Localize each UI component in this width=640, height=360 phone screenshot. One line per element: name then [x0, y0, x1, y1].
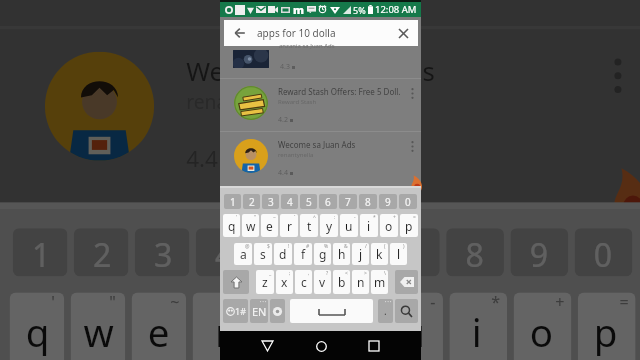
button[interactable]: Reward Stash Offers: Free 5 Doll.: [0, 0, 640, 26]
button[interactable]: 7: [339, 194, 357, 209]
staticText: u: [345, 218, 353, 234]
button[interactable]: n: [352, 270, 369, 294]
button[interactable]: r: [193, 292, 250, 360]
button[interactable]: 2: [243, 194, 260, 209]
button[interactable]: 2: [74, 228, 128, 276]
button[interactable]: Symbols: [223, 299, 248, 323]
button[interactable]: .: [378, 299, 393, 323]
button[interactable]: More options: [404, 79, 421, 131]
button[interactable]: q: [223, 214, 240, 237]
staticText: f: [301, 246, 306, 262]
staticText: y: [340, 305, 363, 357]
staticText: 1#: [235, 305, 246, 317]
button[interactable]: u: [385, 292, 443, 360]
button[interactable]: s: [254, 243, 272, 265]
button[interactable]: More options: [404, 132, 421, 184]
button[interactable]: Home: [308, 333, 334, 359]
staticText: z: [262, 274, 268, 290]
button[interactable]: Back: [224, 20, 418, 46]
button[interactable]: v: [314, 270, 331, 294]
button[interactable]: p: [400, 214, 418, 237]
staticText: Reward Stash Offers: Free 5 Doll.: [278, 86, 401, 97]
button[interactable]: 6: [319, 194, 337, 209]
button[interactable]: y: [321, 292, 379, 360]
button[interactable]: a: [234, 243, 252, 265]
button[interactable]: i: [449, 292, 507, 360]
staticText: \: [384, 270, 386, 277]
button[interactable]: c: [295, 270, 312, 294]
button[interactable]: t: [257, 292, 315, 360]
button[interactable]: 0: [399, 194, 417, 209]
button[interactable]: i: [360, 214, 378, 237]
staticText: g: [319, 246, 327, 262]
button[interactable]: More options: [591, 29, 640, 196]
button[interactable]: Reward Stash Offers: Free 5 Doll.: [220, 79, 421, 131]
button[interactable]: Wecome sa Juan Ads: [0, 29, 640, 196]
button[interactable]: g: [314, 243, 331, 265]
staticText: m: [293, 2, 304, 17]
button[interactable]: 9: [379, 194, 397, 209]
button[interactable]: y: [320, 214, 338, 237]
staticText: 7: [401, 231, 421, 276]
button[interactable]: e: [132, 292, 186, 360]
staticText: =: [619, 292, 629, 315]
button[interactable]: k: [371, 243, 388, 265]
button[interactable]: 4: [196, 228, 250, 276]
button[interactable]: 5: [300, 194, 317, 209]
button[interactable]: Shift: [223, 270, 249, 294]
button[interactable]: Wecome sa Juan Ads: [220, 132, 421, 184]
button[interactable]: b: [333, 270, 350, 294]
button[interactable]: Back: [254, 333, 280, 359]
staticText: @: [245, 243, 250, 250]
staticText: :: [366, 292, 372, 315]
staticText: `: [237, 292, 244, 315]
button[interactable]: 1: [224, 194, 241, 209]
staticText: q: [228, 218, 236, 234]
button[interactable]: e: [261, 214, 278, 237]
button[interactable]: x: [276, 270, 293, 294]
staticText: 2: [249, 195, 255, 209]
staticText: +: [555, 292, 565, 315]
button[interactable]: h: [333, 243, 350, 265]
button[interactable]: u: [340, 214, 358, 237]
button[interactable]: Space: [290, 299, 373, 323]
button[interactable]: 3: [262, 194, 279, 209]
button[interactable]: q: [10, 292, 64, 360]
staticText: d: [279, 246, 287, 262]
button[interactable]: 9: [510, 228, 568, 276]
button[interactable]: m: [371, 270, 388, 294]
button[interactable]: EN: [250, 299, 268, 323]
button[interactable]: 5: [257, 228, 311, 276]
button[interactable]: 7: [382, 228, 440, 276]
button[interactable]: Recent apps: [361, 333, 387, 359]
staticText: `: [294, 214, 296, 221]
staticText: i: [472, 305, 485, 357]
button[interactable]: 1: [13, 228, 67, 276]
button[interactable]: l: [390, 243, 407, 265]
button[interactable]: j: [352, 243, 369, 265]
button[interactable]: anzania sa Juan Ads: [220, 47, 421, 78]
button[interactable]: 4: [281, 194, 298, 209]
button[interactable]: r: [280, 214, 298, 237]
button[interactable]: 3: [135, 228, 189, 276]
button[interactable]: Backspace: [395, 270, 418, 294]
button[interactable]: 8: [446, 228, 504, 276]
button[interactable]: d: [274, 243, 292, 265]
button[interactable]: f: [294, 243, 312, 265]
button[interactable]: Settings: [270, 299, 285, 323]
button[interactable]: 6: [318, 228, 376, 276]
button[interactable]: o: [514, 292, 571, 360]
button[interactable]: o: [380, 214, 398, 237]
button[interactable]: w: [71, 292, 125, 360]
button[interactable]: t: [300, 214, 318, 237]
staticText: %: [324, 243, 329, 250]
button[interactable]: w: [242, 214, 259, 237]
button[interactable]: 0: [575, 228, 632, 276]
button[interactable]: z: [256, 270, 274, 294]
button[interactable]: p: [578, 292, 636, 360]
button[interactable]: Search: [395, 299, 418, 323]
button[interactable]: 8: [359, 194, 377, 209]
staticText: ,: [308, 270, 310, 277]
